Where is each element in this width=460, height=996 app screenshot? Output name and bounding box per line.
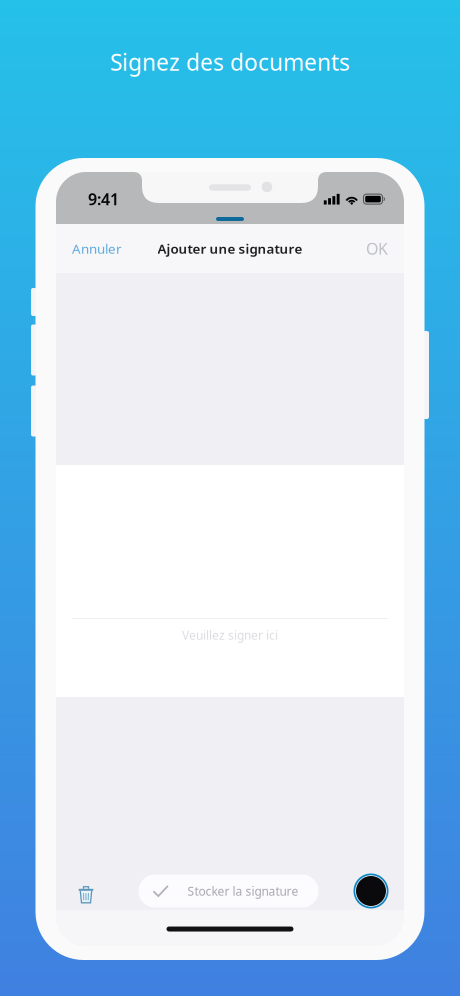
staticText: Ajouter une signature <box>157 240 302 257</box>
button[interactable]: Stocker la signature <box>138 874 318 907</box>
button[interactable]: OK <box>362 226 392 270</box>
button[interactable]: Couleur du stylo <box>351 871 391 911</box>
staticText: Annuler <box>72 240 122 257</box>
button[interactable]: Annuler <box>68 226 126 270</box>
button[interactable]: Supprimer la signature <box>66 871 106 911</box>
staticText: OK <box>366 238 388 259</box>
staticText: 9:41 <box>88 188 119 210</box>
staticText: Stocker la signature <box>187 883 298 899</box>
staticText: Signez des documents <box>110 47 350 77</box>
staticText: Veuillez signer ici <box>182 627 278 643</box>
